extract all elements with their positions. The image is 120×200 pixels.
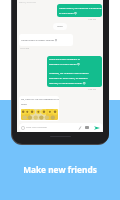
staticText: Lorem Ipsum, you need for 4 questions [59,7,102,10]
button[interactable]: There are many variations of [47,56,102,87]
staticText: Ok, Cool! So Are you available for some [21,98,59,101]
staticText: time? [21,103,27,106]
button[interactable]: Lorem Ipsum, you need for 4 questions [57,4,102,17]
staticText: Make new friends [0,164,120,175]
staticText: Today [57,25,63,28]
staticText: alteration in some form, by injected [49,77,88,80]
staticText: Sep 13, 01:31 PM [19,1,36,4]
staticText: 1:05 PM [88,88,96,91]
staticText: passages of Lorem Ipsum 😊 [49,63,80,66]
button[interactable]: Camera [85,126,89,129]
button[interactable]: Send [94,125,100,131]
button[interactable]: Ok, Cool! So Are you available for some [19,96,59,121]
button[interactable]: Attach [78,126,82,130]
staticText: 12:12 PM [20,47,30,50]
staticText: Type your message [26,126,47,129]
staticText: There are many variations of [49,58,80,61]
staticText: Lorem Ipsum is simply dummy 😊 [21,39,58,42]
staticText: 1:05 PM [88,18,96,21]
staticText: so send them 😊 [59,12,77,15]
button[interactable]: Type your message [19,123,103,132]
button[interactable]: Lorem Ipsum is simply dummy 😊 [19,34,73,46]
staticText: Available, For majority have suffered [49,72,89,75]
staticText: humour, or randomised words. 😊 [49,82,86,85]
